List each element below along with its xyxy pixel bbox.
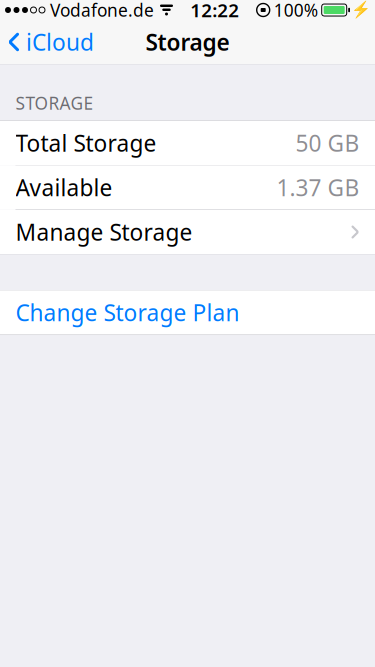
button[interactable]: iCloud [0, 21, 94, 63]
staticText: Change Storage Plan [15, 297, 239, 328]
staticText: iCloud [26, 27, 94, 57]
staticText: STORAGE [15, 91, 93, 114]
button[interactable]: Manage Storage [0, 210, 375, 254]
staticText: Available [15, 172, 112, 203]
staticText: Total Storage [15, 128, 156, 158]
button[interactable]: Change Storage Plan [0, 290, 375, 334]
staticText: Manage Storage [15, 217, 192, 247]
staticText: ⚡ [351, 1, 371, 19]
staticText: 100% [274, 0, 318, 21]
staticText: 1.37 GB [276, 172, 359, 203]
staticText: Storage [145, 27, 229, 57]
staticText: 50 GB [295, 128, 359, 158]
staticText: 12:22 [190, 0, 239, 22]
staticText: Vodafone.de [50, 0, 154, 21]
